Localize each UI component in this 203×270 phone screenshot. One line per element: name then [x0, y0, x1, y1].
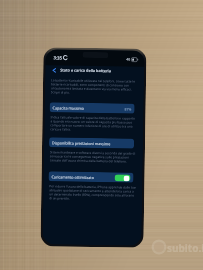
staticText: Per ridurre l'usura della batteria, iPho… [49, 184, 136, 202]
staticText: 40 [126, 56, 130, 62]
button[interactable]: Back [45, 65, 144, 76]
button[interactable]: Disponibilita prestazioni massime [49, 137, 134, 149]
staticText: Stato e carica della batteria [60, 67, 111, 73]
staticText: Caricamento ottimizzato [51, 174, 95, 180]
button[interactable]: Caricamento ottimizzato [114, 174, 131, 182]
staticText: subito.it [167, 241, 203, 255]
other: Back [51, 67, 57, 73]
staticText: Indica l'attuale valore di capacita dell… [50, 115, 137, 133]
staticText: Sistemi hardware e software diversi a se… [50, 150, 137, 164]
staticText: 3:35 [53, 54, 62, 60]
staticText: 87% [125, 106, 132, 112]
staticText: Capacita massima [53, 105, 85, 111]
button[interactable]: Capacita massima [49, 102, 135, 114]
staticText: Disponibilita prestazioni massime [52, 140, 111, 146]
button[interactable]: Caricamento ottimizzato [48, 171, 134, 183]
staticText: La batteria ricaricabile utilizzata nei … [51, 78, 138, 96]
